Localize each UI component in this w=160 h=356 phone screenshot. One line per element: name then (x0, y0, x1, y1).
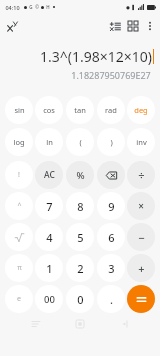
staticText: ● (126, 5, 130, 10)
button[interactable]: Scientific mode (3, 17, 21, 35)
button[interactable]: ( (66, 128, 94, 156)
staticText: + (138, 261, 145, 276)
button[interactable]: 0 (66, 285, 94, 313)
staticText: 7 (46, 199, 53, 214)
staticText: 0 (77, 292, 84, 307)
staticText: ( (79, 137, 82, 147)
staticText: H (46, 4, 50, 10)
button[interactable]: Equals (127, 285, 155, 313)
staticText: tan (74, 105, 86, 115)
button[interactable]: ! (5, 161, 33, 189)
staticText: − (138, 230, 145, 245)
button[interactable]: Home (71, 315, 89, 333)
button[interactable]: ln (35, 128, 63, 156)
button[interactable]: log (5, 128, 33, 156)
staticText: 00 (44, 293, 55, 306)
staticText: × (138, 199, 144, 213)
staticText: AC (44, 169, 55, 181)
staticText: 2 (77, 261, 84, 276)
staticText: % (76, 169, 85, 182)
button[interactable]: 5 (66, 223, 94, 251)
staticText: . (110, 292, 113, 307)
button[interactable]: rad (97, 96, 125, 124)
staticText: © (35, 4, 39, 10)
staticText: 6 (108, 230, 115, 245)
button[interactable]: Unit converter (124, 17, 142, 35)
button[interactable]: Equation solver (106, 17, 124, 35)
button[interactable]: Square root (5, 223, 33, 251)
staticText: 04:10 (5, 4, 20, 11)
button[interactable]: ) (97, 128, 125, 156)
staticText: 1 (46, 261, 53, 276)
staticText: 4 (46, 230, 53, 245)
button[interactable]: 3 (97, 254, 125, 282)
button[interactable]: inv (127, 128, 155, 156)
staticText: 1.18287950769E27 (71, 69, 151, 81)
button[interactable]: AC (35, 161, 63, 189)
staticText: ) (110, 137, 113, 147)
staticText: e (17, 294, 21, 304)
button[interactable]: sin (5, 96, 33, 124)
button[interactable]: e (5, 285, 33, 313)
button[interactable]: ÷ (127, 161, 155, 189)
staticText: 3 (108, 261, 115, 276)
button[interactable]: + (127, 254, 155, 282)
staticText: cos (43, 105, 55, 115)
button[interactable]: tan (66, 96, 94, 124)
staticText: sin (14, 105, 25, 115)
staticText: π (17, 263, 22, 273)
staticText: ▌ (132, 5, 136, 10)
button[interactable]: π (5, 254, 33, 282)
staticText: rad (105, 105, 117, 115)
staticText: ÷ (138, 168, 145, 183)
staticText: 1.3^(1.98×12×10) (40, 47, 152, 66)
button[interactable]: Delete (97, 161, 125, 189)
button[interactable]: Recents (27, 315, 45, 333)
button[interactable]: deg (127, 96, 155, 124)
button[interactable]: . (97, 285, 125, 313)
staticText: ^ (17, 201, 22, 211)
staticText: ln (46, 137, 53, 147)
button[interactable]: 00 (35, 285, 63, 313)
button[interactable]: 2 (66, 254, 94, 282)
staticText: inv (136, 137, 147, 147)
staticText: ! (18, 170, 20, 180)
staticText: 8 (77, 199, 84, 214)
button[interactable]: cos (35, 96, 63, 124)
button[interactable]: 9 (97, 192, 125, 220)
button[interactable]: ^ (5, 192, 33, 220)
button[interactable]: 8 (66, 192, 94, 220)
staticText: deg (134, 105, 148, 115)
button[interactable]: − (127, 223, 155, 251)
button[interactable]: 7 (35, 192, 63, 220)
button[interactable]: 1 (35, 254, 63, 282)
staticText: 5 (77, 230, 84, 245)
staticText: 9 (108, 199, 115, 214)
staticText: log (13, 137, 25, 147)
staticText: G (29, 4, 33, 10)
button[interactable]: More options (142, 18, 158, 34)
button[interactable]: × (127, 192, 155, 220)
button[interactable]: 4 (35, 223, 63, 251)
button[interactable]: % (66, 161, 94, 189)
button[interactable]: 6 (97, 223, 125, 251)
